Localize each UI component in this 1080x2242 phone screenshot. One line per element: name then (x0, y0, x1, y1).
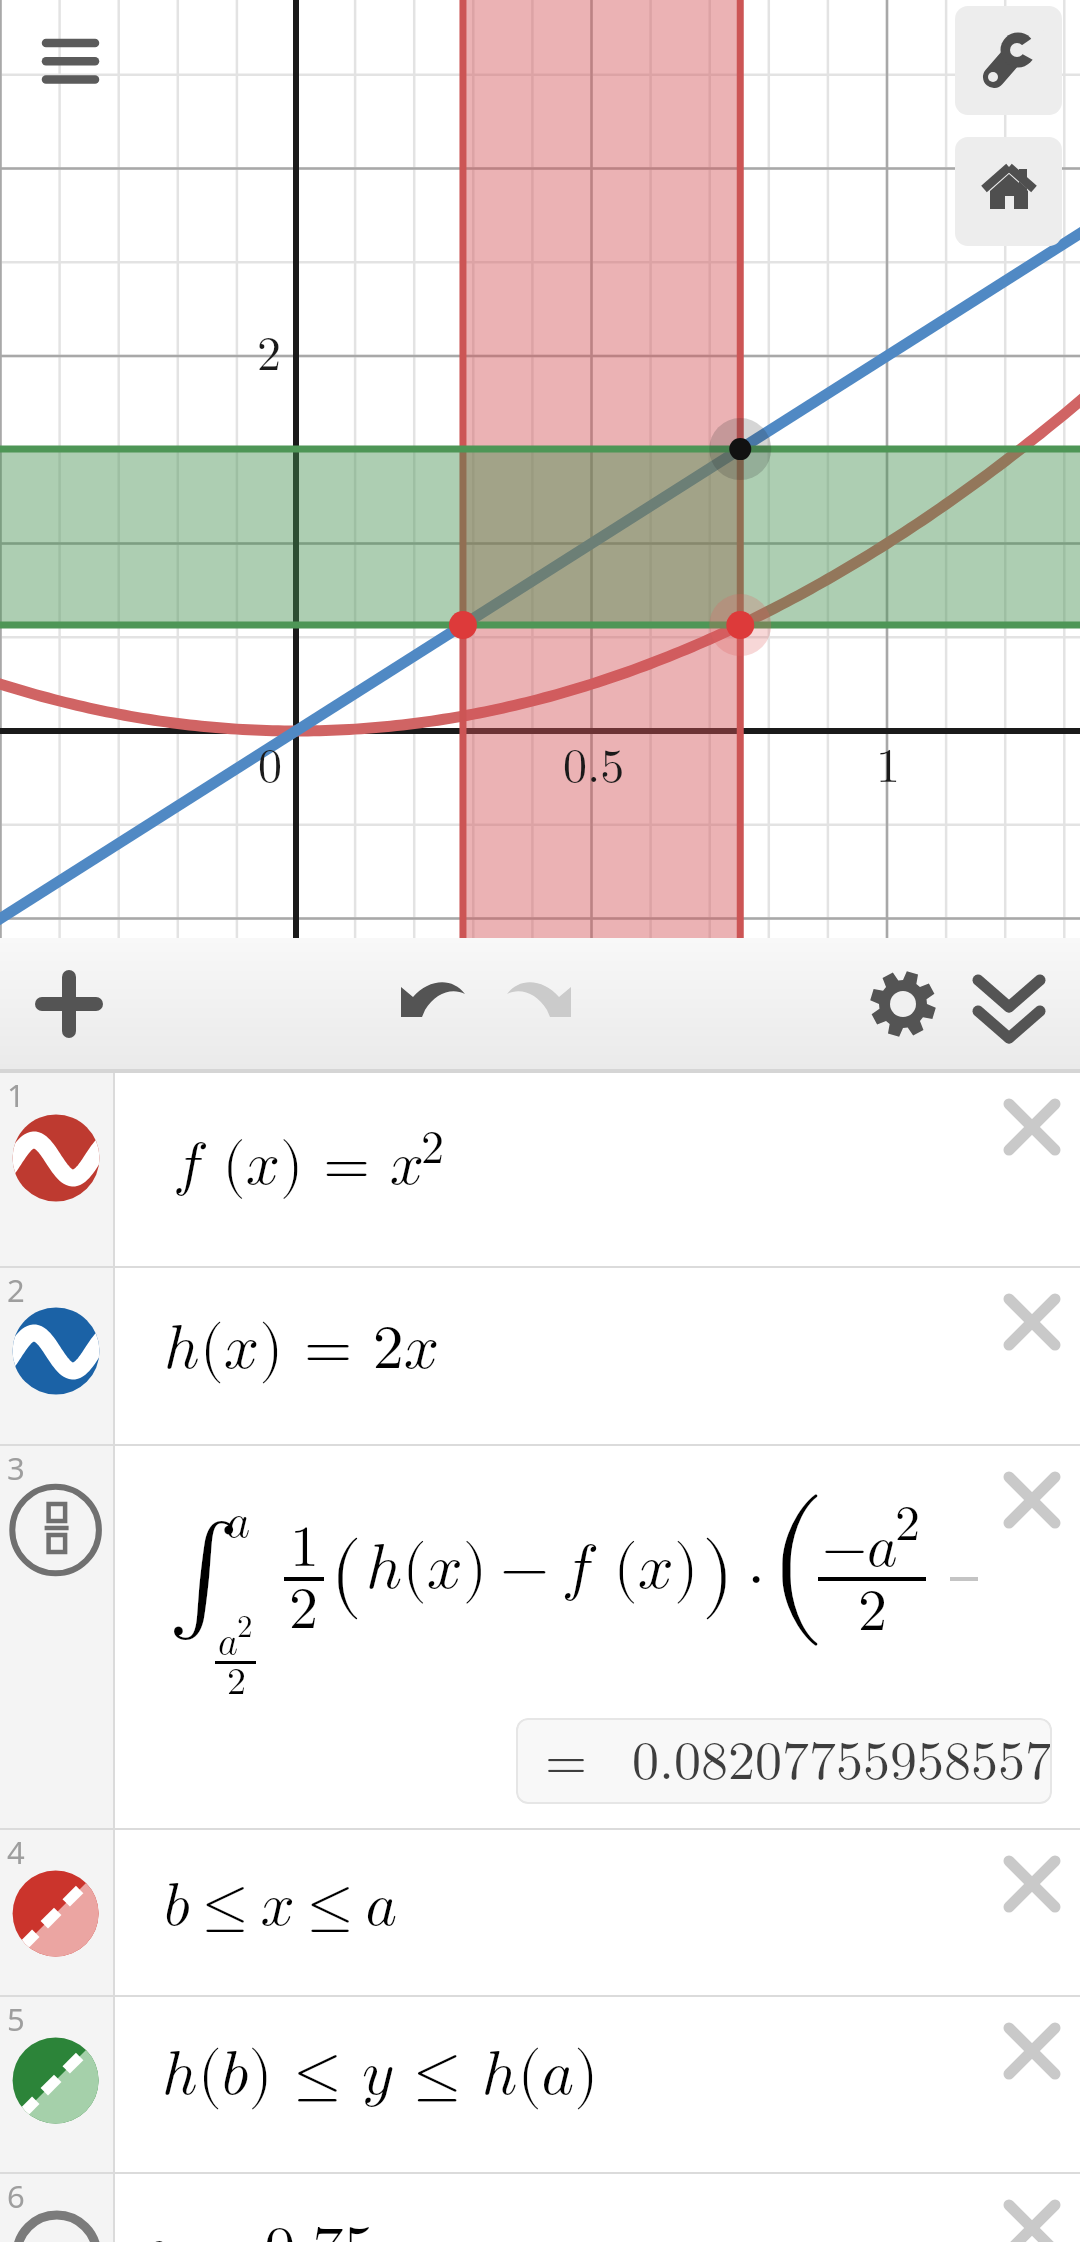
staticText: ℎ(𝑥) = 2𝑥 (164, 1318, 440, 1380)
button[interactable]: 6 (0, 2174, 1080, 2242)
staticText: 𝑎 (218, 1623, 239, 1661)
staticText: 𝑏 ≤ 𝑥 ≤ 𝑎 (164, 1877, 398, 1937)
staticText: ∫ (168, 1521, 240, 1628)
staticText: 1 (7, 1074, 25, 1116)
button[interactable]: Settings (853, 938, 953, 1069)
staticText: · (747, 1543, 766, 1609)
button[interactable]: Redo (490, 938, 590, 1069)
staticText: ) (702, 1533, 734, 1615)
staticText: 2 (7, 1269, 25, 1311)
staticText: 2 (289, 1581, 319, 1639)
staticText: 6 (7, 2175, 25, 2217)
button[interactable]: Delete (1004, 1856, 1060, 1912)
staticText: ( (330, 1533, 362, 1615)
staticText: −𝑎 (822, 1519, 898, 1577)
button[interactable]: Delete (1004, 1472, 1060, 1528)
button[interactable]: 5 (0, 1997, 1080, 2172)
staticText: 4 (7, 1831, 25, 1873)
staticText: 2 (227, 1663, 247, 1701)
staticText: 0.5 (563, 743, 625, 791)
staticText: ℎ(𝑏) ≤ 𝑦 ≤ ℎ(𝑎) (162, 2044, 599, 2106)
staticText: 𝑎 = 0.75 (142, 2219, 375, 2242)
button[interactable]: 2 (0, 1268, 1080, 1444)
button[interactable]: 1 (0, 1073, 1080, 1266)
button[interactable]: Undo (382, 938, 482, 1069)
staticText: 2 (237, 1612, 253, 1643)
staticText: 0 (258, 743, 283, 791)
staticText: 2 (895, 1500, 920, 1550)
staticText: 2 (421, 1126, 444, 1172)
button[interactable]: Collapse (959, 938, 1059, 1069)
button[interactable]: Delete (1004, 1099, 1060, 1155)
button[interactable]: 3 (0, 1446, 1080, 1828)
button[interactable]: Delete (1004, 2200, 1060, 2242)
staticText: 5 (7, 1998, 25, 2040)
staticText: 𝑎 (226, 1500, 251, 1546)
button[interactable]: Delete (1004, 1294, 1060, 1350)
staticText: ( (767, 1485, 827, 1637)
button[interactable]: Settings (955, 6, 1062, 115)
button[interactable]: 4 (0, 1830, 1080, 1995)
button[interactable]: Delete (1004, 2023, 1060, 2079)
staticText: = 0.08207755958557 (545, 1735, 1052, 1789)
staticText: 2 (257, 331, 282, 379)
staticText: ℎ(𝑥) − 𝑓 (𝑥) (366, 1537, 699, 1600)
button[interactable]: Menu (20, 18, 120, 108)
staticText: 1 (876, 743, 901, 791)
staticText: 3 (7, 1447, 25, 1489)
staticText: 1 (290, 1519, 320, 1577)
button[interactable]: Home (955, 137, 1062, 246)
button[interactable]: Add (20, 938, 120, 1069)
staticText: 2 (858, 1583, 888, 1641)
staticText: 𝑓 (𝑥) = 𝑥 (173, 1136, 425, 1196)
